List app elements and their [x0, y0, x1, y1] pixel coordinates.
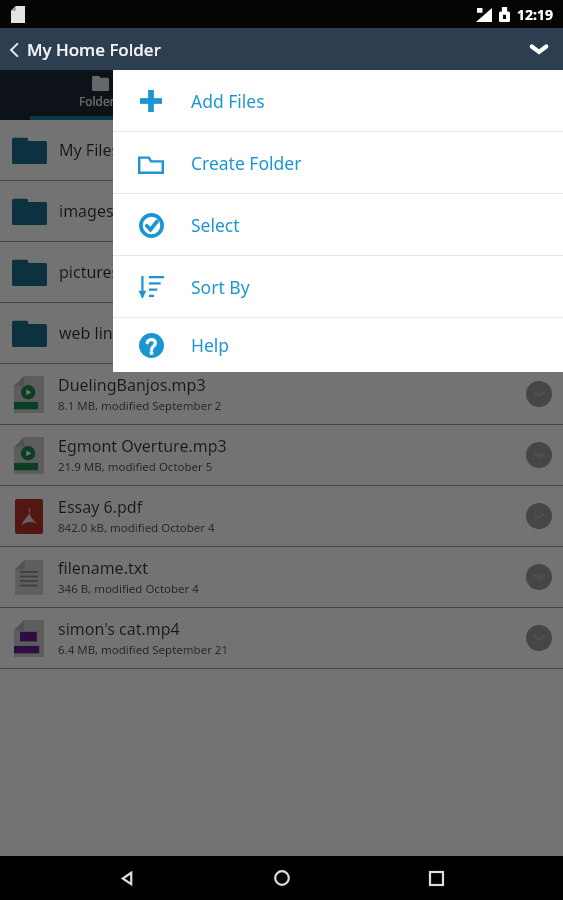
staticText: 12:19	[517, 5, 553, 24]
staticText: 6.4 MB, modified September 21	[58, 642, 229, 658]
staticText: images	[59, 200, 114, 222]
button[interactable]: Select	[113, 194, 563, 255]
button[interactable]: Expand Egmont Overture.mp3	[515, 431, 563, 479]
staticText: 21.9 MB, modified October 5	[58, 459, 213, 475]
staticText: web links	[59, 322, 129, 344]
button[interactable]: simon's cat.mp4	[0, 608, 563, 668]
button[interactable]: Egmont Overture.mp3	[0, 425, 563, 485]
button[interactable]: Home	[254, 856, 310, 900]
staticText: 842.0 kB, modified October 4	[58, 520, 215, 536]
staticText: My Home Folder	[27, 38, 161, 61]
button[interactable]: Help	[113, 318, 563, 372]
staticText: filename.txt	[58, 557, 148, 579]
button[interactable]: Expand DuelingBanjos.mp3	[515, 370, 563, 418]
button[interactable]: Back	[99, 856, 155, 900]
button[interactable]: images	[0, 181, 563, 241]
button[interactable]: Sort By	[113, 256, 563, 317]
button[interactable]: Add Files	[113, 70, 563, 131]
staticText: Essay 6.pdf	[58, 496, 143, 518]
button[interactable]: More options	[515, 28, 563, 70]
button[interactable]: Essay 6.pdf	[0, 486, 563, 546]
staticText: simon's cat.mp4	[58, 618, 180, 640]
button[interactable]: My Home Folder	[0, 32, 173, 67]
button[interactable]: Expand simon's cat.mp4	[515, 614, 563, 662]
button[interactable]: Expand Essay 6.pdf	[515, 492, 563, 540]
button[interactable]: web links	[0, 303, 563, 363]
staticText: 346 B, modified October 4	[58, 581, 199, 597]
staticText: Help	[191, 333, 230, 357]
button[interactable]: Recents	[408, 856, 464, 900]
staticText: pictures	[59, 261, 120, 283]
staticText: My Files	[59, 139, 120, 161]
staticText: Add Files	[191, 89, 265, 113]
button[interactable]: DuelingBanjos.mp3	[0, 364, 563, 424]
staticText: Select	[191, 213, 240, 237]
button[interactable]: pictures	[0, 242, 563, 302]
staticText: Egmont Overture.mp3	[58, 435, 227, 457]
staticText: Folders	[79, 93, 121, 109]
button[interactable]: filename.txt	[0, 547, 563, 607]
staticText: Sort By	[191, 275, 250, 299]
button[interactable]: Create Folder	[113, 132, 563, 193]
staticText: Create Folder	[191, 151, 302, 175]
button[interactable]: Expand filename.txt	[515, 553, 563, 601]
button[interactable]: My Files	[0, 120, 563, 180]
staticText: 8.1 MB, modified September 2	[58, 398, 222, 414]
staticText: DuelingBanjos.mp3	[58, 374, 206, 396]
